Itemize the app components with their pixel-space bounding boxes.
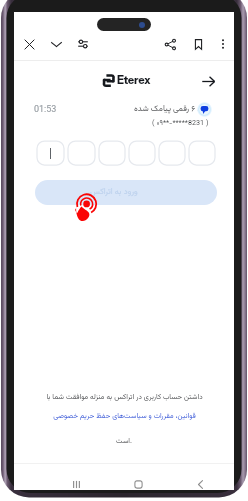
staticText: کد ۶ رقمی پیامک شده bbox=[134, 103, 206, 115]
button[interactable]: Eterex bbox=[102, 71, 151, 89]
button[interactable]: Customise bbox=[74, 35, 92, 53]
staticText: قوانین، مقررات و سیاست‌های حفظ حریم خصوص… bbox=[53, 411, 196, 422]
button[interactable]: ورود به اتراکس bbox=[35, 180, 217, 205]
button[interactable]: Close bbox=[20, 35, 38, 53]
button[interactable] bbox=[68, 141, 95, 165]
button[interactable] bbox=[189, 141, 215, 165]
button[interactable]: Back bbox=[200, 73, 216, 89]
staticText: ورود به اتراکس bbox=[90, 186, 138, 199]
button[interactable]: Back bbox=[187, 471, 214, 498]
button[interactable] bbox=[129, 141, 155, 165]
staticText: است. bbox=[116, 436, 132, 447]
button[interactable]: Recents bbox=[63, 471, 90, 498]
button[interactable]: Bookmark bbox=[189, 35, 207, 53]
staticText: 01:53 bbox=[34, 104, 57, 115]
button[interactable] bbox=[159, 141, 185, 165]
button[interactable]: Home bbox=[125, 471, 152, 498]
staticText: ( ۰۹**-*****8231 ) bbox=[152, 118, 209, 129]
button[interactable]: Share bbox=[161, 35, 179, 53]
button[interactable] bbox=[99, 141, 125, 165]
button[interactable]: Collapse bbox=[47, 35, 65, 53]
staticText: داشتن حساب کاربری در اتراکس به منزله موا… bbox=[46, 392, 203, 403]
button[interactable]: قوانین، مقررات و سیاست‌های حفظ حریم خصوص… bbox=[14, 411, 234, 422]
button[interactable] bbox=[37, 141, 64, 165]
button[interactable]: More options bbox=[214, 35, 232, 53]
staticText: Eterex bbox=[117, 73, 151, 87]
